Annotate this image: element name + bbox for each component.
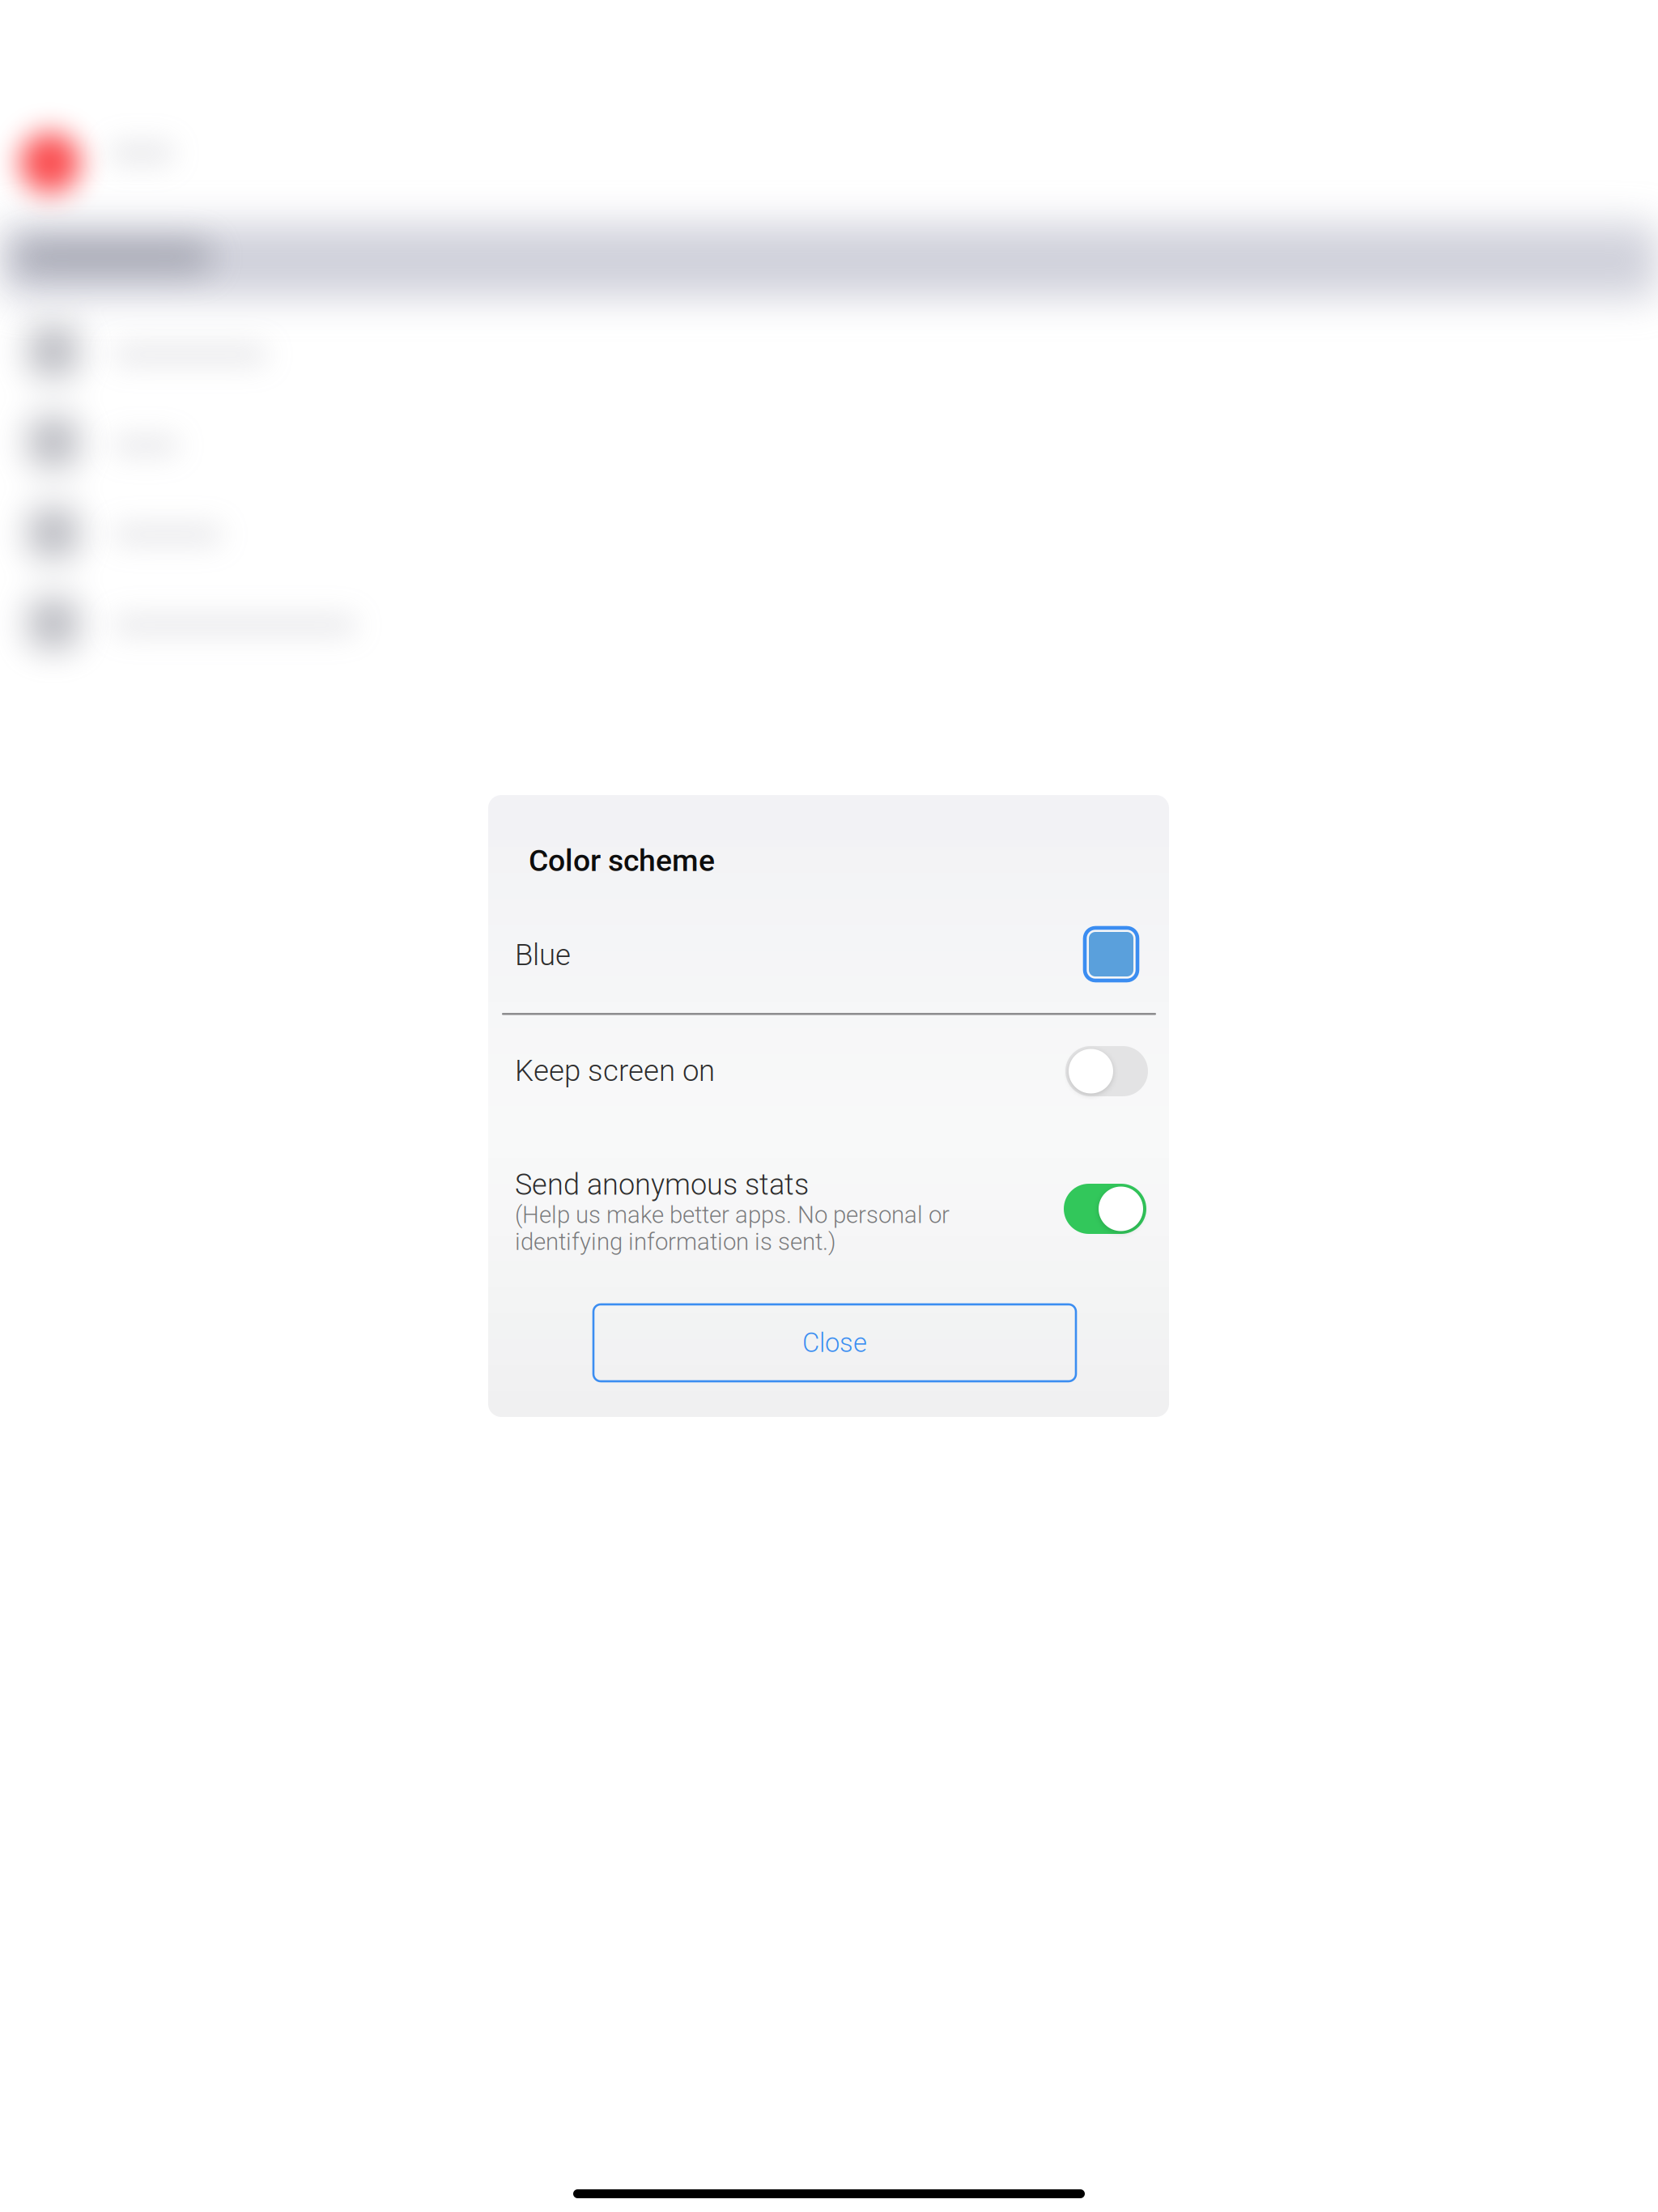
button[interactable]: Close	[593, 1304, 1076, 1381]
staticText: (Help us make better apps. No personal o…	[515, 1201, 950, 1229]
staticText: Blue	[515, 938, 571, 972]
button[interactable]: Send anonymous stats	[488, 1168, 1169, 1266]
button[interactable]: Keep screen on	[488, 1046, 1169, 1129]
staticText: identifying information is sent.)	[515, 1228, 836, 1256]
staticText: Send anonymous stats	[515, 1168, 809, 1202]
staticText: Keep screen on	[515, 1053, 715, 1088]
button[interactable]: Blue	[488, 926, 1169, 1010]
staticText: Close	[802, 1327, 867, 1358]
staticText: Color scheme	[529, 843, 715, 878]
